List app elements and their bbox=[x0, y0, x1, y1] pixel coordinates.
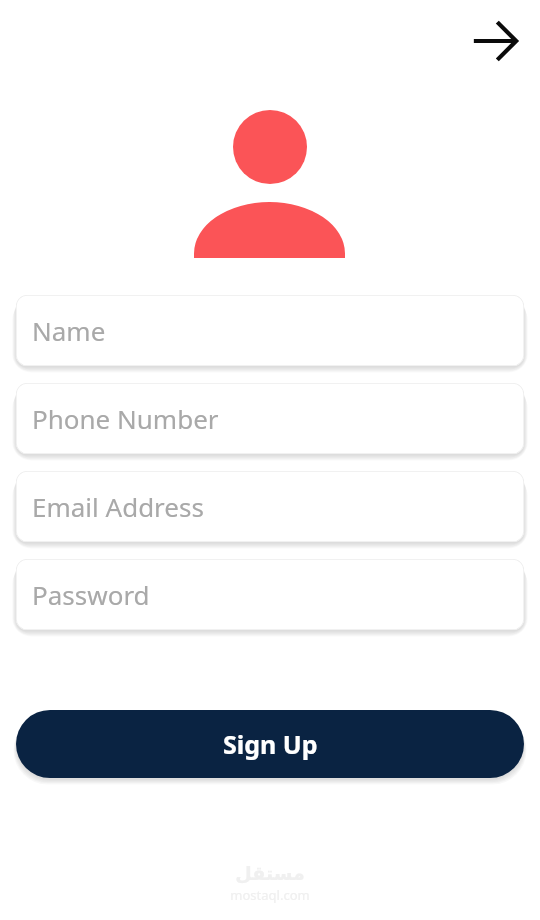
button[interactable]: Name bbox=[16, 295, 524, 366]
button[interactable]: Email Address bbox=[16, 471, 524, 542]
button[interactable]: Phone Number bbox=[16, 383, 524, 454]
staticText: mostaql.com bbox=[230, 886, 310, 904]
button[interactable]: Sign Up bbox=[16, 710, 524, 778]
staticText: مستقل bbox=[235, 862, 305, 884]
staticText: Password bbox=[32, 577, 150, 612]
staticText: Name bbox=[32, 313, 106, 348]
staticText: Email Address bbox=[32, 489, 204, 524]
staticText: Sign Up bbox=[223, 727, 318, 761]
button[interactable]: Password bbox=[16, 559, 524, 630]
staticText: Phone Number bbox=[32, 401, 219, 436]
button[interactable]: Next bbox=[463, 9, 527, 73]
